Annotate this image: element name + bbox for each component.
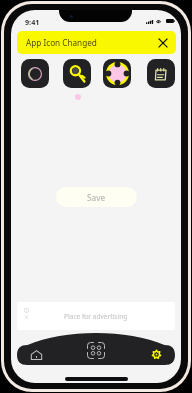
button[interactable]: Dismiss bbox=[156, 36, 170, 50]
button[interactable]: App Icon Changed bbox=[17, 31, 176, 54]
staticText: 9:41 bbox=[25, 17, 40, 27]
button[interactable]: Save bbox=[56, 187, 137, 207]
button[interactable]: Scan bbox=[87, 341, 105, 359]
button[interactable]: Moon app icon bbox=[21, 59, 49, 88]
button[interactable]: Key app icon bbox=[63, 59, 91, 88]
button[interactable]: Notes app icon bbox=[147, 59, 175, 88]
staticText: Place for advertising bbox=[64, 312, 128, 321]
staticText: Save bbox=[87, 192, 106, 203]
staticText: App Icon Changed bbox=[26, 37, 156, 48]
button[interactable]: Place for advertising bbox=[17, 302, 175, 330]
button[interactable]: Settings bbox=[150, 348, 163, 361]
button[interactable]: Flower app icon bbox=[103, 59, 131, 88]
button[interactable]: Home bbox=[28, 346, 45, 363]
